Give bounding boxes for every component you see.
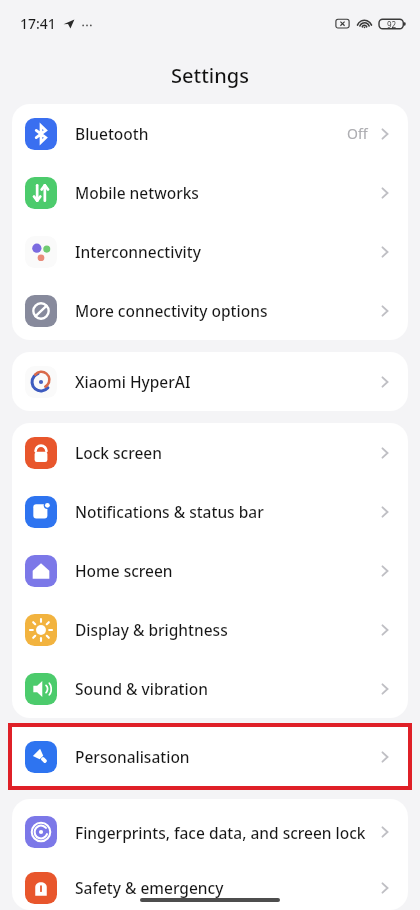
button[interactable]: Interconnectivity <box>12 222 408 281</box>
button[interactable]: Lock screen <box>12 423 408 482</box>
staticText: Lock screen <box>75 442 376 463</box>
staticText: Notifications & status bar <box>75 501 376 522</box>
staticText: Safety & emergency <box>75 877 376 898</box>
staticText: Bluetooth <box>75 123 347 144</box>
staticText: More connectivity options <box>75 300 376 321</box>
button[interactable]: Home screen <box>12 541 408 600</box>
button[interactable]: Display & brightness <box>12 600 408 659</box>
staticText: Interconnectivity <box>75 241 376 262</box>
button[interactable]: Sound & vibration <box>12 659 408 718</box>
staticText: Mobile networks <box>75 182 376 203</box>
staticText: Personalisation <box>75 746 376 767</box>
staticText: Settings <box>171 62 249 89</box>
staticText: 92 <box>387 19 397 30</box>
button[interactable]: Mobile networks <box>12 163 408 222</box>
button[interactable]: Safety & emergency <box>12 865 408 910</box>
button[interactable]: Fingerprints, face data, and screen lock <box>12 799 408 865</box>
staticText: Xiaomi HyperAI <box>75 371 376 392</box>
button[interactable]: Personalisation <box>12 727 408 786</box>
staticText: Sound & vibration <box>75 678 376 699</box>
staticText: 17:41 <box>20 14 56 33</box>
staticText: Fingerprints, face data, and screen lock <box>75 822 370 843</box>
button[interactable]: Notifications & status bar <box>12 482 408 541</box>
staticText: Display & brightness <box>75 619 376 640</box>
staticText: Off <box>347 124 368 143</box>
staticText: Home screen <box>75 560 376 581</box>
button[interactable]: Bluetooth <box>12 104 408 163</box>
button[interactable]: More connectivity options <box>12 281 408 340</box>
button[interactable]: Xiaomi HyperAI <box>12 352 408 411</box>
